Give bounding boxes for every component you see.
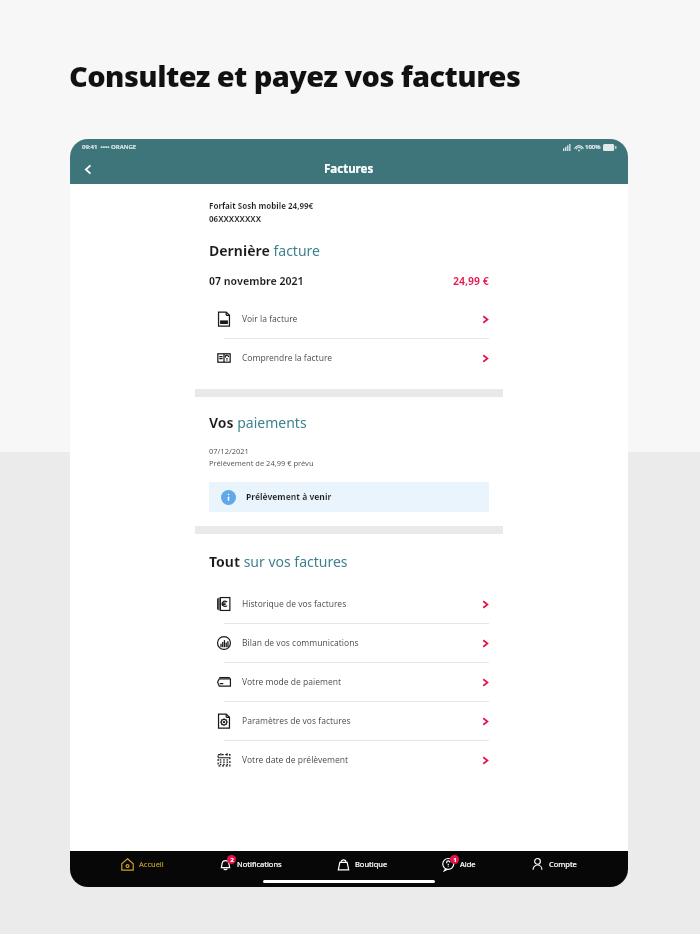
staticText: Accueil	[139, 859, 164, 869]
button[interactable]: Boutique	[333, 853, 392, 875]
staticText: 100%	[585, 143, 601, 151]
button[interactable]: Paramètres de vos factures	[70, 702, 628, 740]
button[interactable]: Bilan de vos communications	[70, 624, 628, 662]
button[interactable]: Historique de vos factures	[70, 585, 628, 623]
staticText: Forfait Sosh mobile 24,99€	[209, 200, 314, 211]
staticText: Compte	[549, 859, 577, 869]
staticText: 2	[230, 856, 234, 863]
button[interactable]: Votre mode de paiement	[70, 663, 628, 701]
staticText: Vos paiements	[209, 413, 307, 432]
staticText: Boutique	[355, 859, 388, 869]
staticText: Prélèvement à venir	[246, 491, 332, 503]
staticText: 24,99 €	[453, 274, 489, 288]
staticText: Prélèvement de 24,99 € prévu	[209, 458, 314, 468]
staticText: 07 novembre 2021	[209, 274, 304, 288]
staticText: Votre mode de paiement	[242, 676, 342, 688]
staticText: Paramètres de vos factures	[242, 715, 351, 727]
button[interactable]: Retour	[74, 155, 102, 183]
button[interactable]: 2	[215, 853, 286, 875]
staticText: Comprendre la facture	[242, 352, 333, 364]
button[interactable]: Compte	[527, 853, 581, 875]
staticText: Bilan de vos communications	[242, 637, 359, 649]
staticText: Historique de vos factures	[242, 598, 347, 610]
staticText: 06XXXXXXXX	[209, 213, 262, 224]
staticText: Aide	[460, 859, 476, 869]
staticText: Votre date de prélèvement	[242, 754, 349, 766]
staticText: Tout sur vos factures	[209, 552, 348, 571]
staticText: Notifications	[237, 859, 282, 869]
button[interactable]: 1	[438, 853, 480, 875]
button[interactable]: Voir la facture	[70, 300, 628, 338]
button[interactable]: Votre date de prélèvement	[70, 741, 628, 779]
staticText: Dernière facture	[209, 241, 320, 260]
staticText: Voir la facture	[242, 313, 298, 325]
button[interactable]: Comprendre la facture	[70, 339, 628, 377]
staticText: 07/12/2021	[209, 446, 249, 456]
staticText: Consultez et payez vos factures	[69, 56, 521, 95]
staticText: 09:41 •••• ORANGE	[82, 143, 137, 151]
staticText: Factures	[324, 161, 374, 177]
button[interactable]: Accueil	[117, 853, 168, 875]
button[interactable]: Prélèvement à venir	[209, 482, 489, 512]
staticText: 1	[453, 856, 457, 863]
